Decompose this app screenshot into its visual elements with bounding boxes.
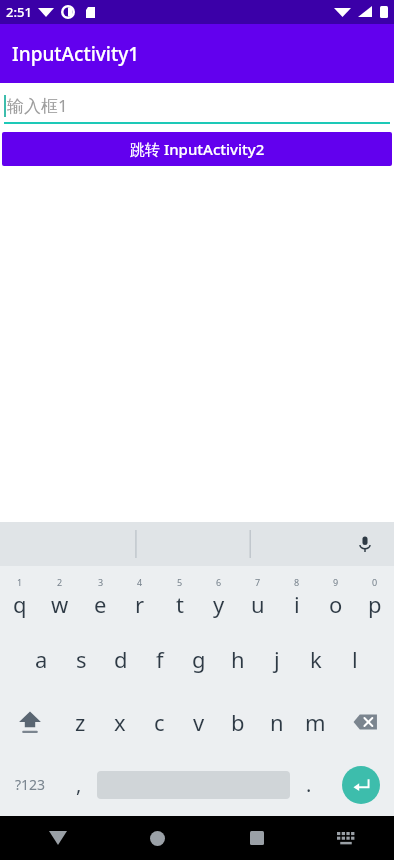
button[interactable]: Recents xyxy=(207,816,306,860)
staticText: l xyxy=(352,644,358,674)
staticText: 7 xyxy=(255,576,261,588)
button[interactable]: 9 xyxy=(316,566,355,628)
staticText: 4 xyxy=(137,576,143,588)
staticText: 9 xyxy=(333,576,339,588)
staticText: j xyxy=(274,644,280,674)
staticText: b xyxy=(231,707,245,737)
staticText: . xyxy=(306,771,312,798)
staticText: h xyxy=(231,644,245,674)
staticText: 5 xyxy=(177,576,183,588)
button[interactable]: z xyxy=(60,690,100,753)
staticText: f xyxy=(156,644,164,674)
staticText: 6 xyxy=(216,576,222,588)
staticText: , xyxy=(76,771,82,798)
staticText: k xyxy=(310,644,322,674)
staticText: i xyxy=(294,589,300,619)
button[interactable]: Enter xyxy=(327,753,394,816)
button[interactable]: 5 xyxy=(160,566,199,628)
staticText: w xyxy=(51,589,69,619)
button[interactable]: 3 xyxy=(80,566,120,628)
button[interactable]: 2 xyxy=(40,566,80,628)
staticText: m xyxy=(305,707,326,737)
staticText: s xyxy=(76,644,87,674)
button[interactable]: 跳转 InputActivity2 xyxy=(2,132,392,166)
staticText: z xyxy=(75,707,86,737)
button[interactable]: n xyxy=(257,690,296,753)
button[interactable]: g xyxy=(179,628,218,690)
staticText: o xyxy=(329,589,343,619)
button[interactable]: Home xyxy=(108,816,207,860)
button[interactable]: j xyxy=(257,628,296,690)
button[interactable]: 输入框1 xyxy=(4,89,390,122)
staticText: InputActivity1 xyxy=(12,41,140,67)
staticText: d xyxy=(114,644,128,674)
button[interactable]: a xyxy=(21,628,61,690)
staticText: e xyxy=(94,589,107,619)
button[interactable]: . xyxy=(290,753,327,816)
staticText: g xyxy=(192,644,206,674)
staticText: 3 xyxy=(98,576,104,588)
staticText: p xyxy=(368,589,382,619)
button[interactable]: ?123 xyxy=(0,753,60,816)
button[interactable]: Backspace xyxy=(335,690,394,753)
button[interactable]: c xyxy=(140,690,179,753)
staticText: 1 xyxy=(17,576,23,588)
button[interactable]: 0 xyxy=(355,566,394,628)
button[interactable]: f xyxy=(140,628,179,690)
button[interactable]: h xyxy=(218,628,257,690)
staticText: y xyxy=(213,589,225,619)
button[interactable]: 6 xyxy=(199,566,238,628)
staticText: 8 xyxy=(294,576,300,588)
button[interactable]: Switch keyboard xyxy=(306,816,386,860)
button[interactable]: s xyxy=(61,628,101,690)
staticText: r xyxy=(135,589,145,619)
button[interactable]: 1 xyxy=(0,566,40,628)
button[interactable]: v xyxy=(179,690,218,753)
button[interactable]: Space xyxy=(97,759,290,810)
button[interactable]: , xyxy=(60,753,97,816)
button[interactable]: Back xyxy=(8,816,108,860)
staticText: t xyxy=(176,589,184,619)
button[interactable]: Shift xyxy=(0,690,60,753)
button[interactable]: b xyxy=(218,690,257,753)
staticText: 跳转 InputActivity2 xyxy=(130,139,265,159)
button[interactable]: d xyxy=(101,628,140,690)
staticText: q xyxy=(13,589,27,619)
button[interactable]: Voice input xyxy=(350,529,380,559)
button[interactable]: x xyxy=(100,690,140,753)
staticText: c xyxy=(154,707,165,737)
staticText: 输入框1 xyxy=(7,94,68,117)
staticText: a xyxy=(35,644,48,674)
button[interactable]: l xyxy=(335,628,374,690)
button[interactable]: k xyxy=(296,628,335,690)
button[interactable]: 4 xyxy=(120,566,160,628)
staticText: x xyxy=(114,707,126,737)
button[interactable]: 8 xyxy=(277,566,316,628)
button[interactable]: m xyxy=(296,690,335,753)
staticText: 2 xyxy=(57,576,63,588)
button[interactable]: 7 xyxy=(238,566,277,628)
staticText: v xyxy=(193,707,205,737)
staticText: 0 xyxy=(372,576,378,588)
staticText: 2:51 xyxy=(6,3,32,21)
staticText: n xyxy=(270,707,284,737)
staticText: ?123 xyxy=(15,775,46,794)
staticText: u xyxy=(251,589,265,619)
